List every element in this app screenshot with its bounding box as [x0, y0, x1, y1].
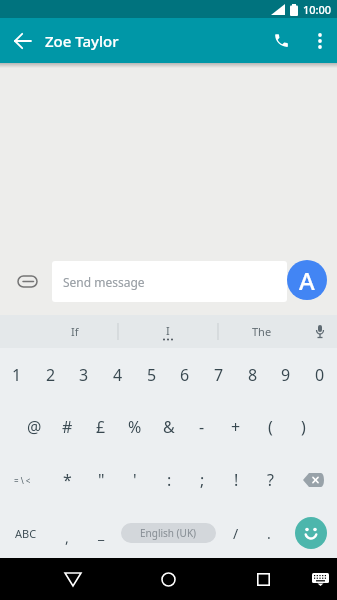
button[interactable]: - [186, 409, 218, 445]
button[interactable]: ? [254, 462, 286, 498]
staticText: ; [200, 469, 205, 491]
staticText: , [65, 528, 69, 547]
staticText: _ [98, 524, 105, 543]
button[interactable]: 7 [203, 357, 235, 393]
staticText: English (UK) [140, 526, 197, 540]
button[interactable] [9, 263, 45, 299]
button[interactable]: : [153, 462, 185, 498]
button[interactable]: 3 [68, 357, 100, 393]
button[interactable] [302, 315, 337, 348]
staticText: The [252, 324, 272, 339]
staticText: : [167, 469, 172, 491]
staticText: ! [234, 469, 239, 491]
staticText: A [299, 264, 315, 297]
staticText: £ [96, 416, 106, 438]
button[interactable]: ABC [10, 515, 42, 551]
button[interactable] [242, 558, 284, 600]
button[interactable]: A [287, 260, 327, 300]
staticText: 5 [147, 364, 157, 386]
button[interactable]: / [220, 515, 252, 551]
staticText: Send message [63, 274, 145, 290]
button[interactable] [303, 558, 337, 600]
button[interactable]: 9 [270, 357, 302, 393]
staticText: ) [301, 416, 306, 438]
button[interactable]: 8 [237, 357, 269, 393]
button[interactable]: ; [186, 462, 218, 498]
button[interactable]: _ [85, 515, 117, 551]
button[interactable]: & [153, 409, 185, 445]
button[interactable]: ) [287, 409, 319, 445]
staticText: & [163, 416, 175, 438]
button[interactable] [295, 462, 331, 498]
button[interactable]: = \ < [6, 462, 38, 498]
staticText: % [128, 416, 142, 438]
staticText: I [166, 323, 170, 338]
button[interactable]: ' [119, 462, 151, 498]
button[interactable]: I [140, 315, 196, 348]
staticText: 2 [46, 364, 56, 386]
staticText: . [267, 524, 271, 543]
staticText: 3 [79, 364, 89, 386]
staticText: 1 [12, 364, 22, 386]
button[interactable]: English (UK) [121, 523, 216, 543]
staticText: ' [133, 469, 137, 491]
staticText: ABC [15, 526, 37, 541]
staticText: 9 [281, 364, 291, 386]
staticText: 0 [315, 364, 325, 386]
button[interactable]: + [220, 409, 252, 445]
staticText: ( [268, 416, 273, 438]
button[interactable]: 0 [304, 357, 336, 393]
button[interactable]: * [51, 462, 83, 498]
button[interactable] [0, 18, 45, 63]
button[interactable]: 1 [1, 357, 33, 393]
button[interactable] [293, 515, 329, 551]
button[interactable] [303, 18, 337, 63]
button[interactable]: The [234, 315, 290, 348]
staticText: " [98, 469, 105, 491]
staticText: @ [27, 416, 42, 438]
staticText: # [62, 416, 73, 438]
staticText: 8 [248, 364, 258, 386]
button[interactable]: ( [254, 409, 286, 445]
button[interactable]: , [51, 519, 83, 555]
staticText: 4 [113, 364, 123, 386]
staticText: = \ < [14, 475, 31, 486]
button[interactable]: 2 [35, 357, 67, 393]
button[interactable]: Send message [52, 261, 287, 302]
button[interactable]: 5 [136, 357, 168, 393]
staticText: If [71, 324, 79, 339]
staticText: * [63, 469, 72, 491]
button[interactable]: " [85, 462, 117, 498]
button[interactable]: £ [85, 409, 117, 445]
staticText: - [199, 416, 205, 438]
staticText: Zoe Taylor [45, 31, 119, 51]
staticText: 7 [214, 364, 224, 386]
button[interactable]: 6 [169, 357, 201, 393]
button[interactable] [52, 558, 94, 600]
button[interactable]: ! [220, 462, 252, 498]
button[interactable]: . [253, 515, 285, 551]
staticText: 6 [180, 364, 190, 386]
staticText: + [231, 416, 241, 438]
button[interactable]: # [51, 409, 83, 445]
staticText: 10:00 [303, 2, 332, 17]
button[interactable] [147, 558, 189, 600]
staticText: ? [267, 469, 274, 491]
staticText: / [233, 524, 239, 543]
button[interactable] [259, 18, 303, 63]
button[interactable]: 4 [102, 357, 134, 393]
button[interactable]: % [119, 409, 151, 445]
button[interactable]: @ [18, 409, 50, 445]
button[interactable]: If [47, 315, 103, 348]
